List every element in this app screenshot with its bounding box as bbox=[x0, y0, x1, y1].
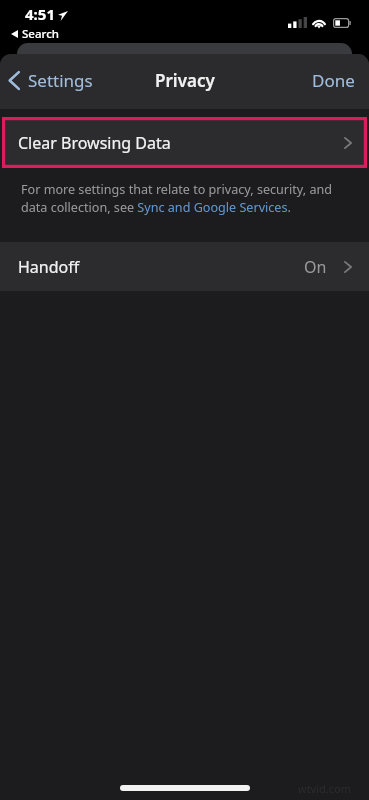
button[interactable]: Handoff bbox=[0, 242, 369, 291]
button[interactable]: Done bbox=[300, 61, 369, 100]
staticText: Clear Browsing Data bbox=[18, 132, 171, 154]
staticText: Settings bbox=[28, 69, 93, 92]
button[interactable]: Settings bbox=[0, 61, 103, 100]
staticText: Handoff bbox=[18, 256, 80, 278]
staticText: Search bbox=[22, 26, 59, 42]
staticText: Done bbox=[312, 69, 355, 92]
staticText: For more settings that relate to privacy… bbox=[21, 181, 347, 215]
button[interactable]: Clear Browsing Data bbox=[2, 117, 367, 168]
staticText: 4:51 bbox=[25, 4, 55, 24]
staticText: On bbox=[304, 256, 327, 278]
staticText: Privacy bbox=[155, 69, 215, 92]
staticText: wtvid.com bbox=[298, 781, 351, 796]
